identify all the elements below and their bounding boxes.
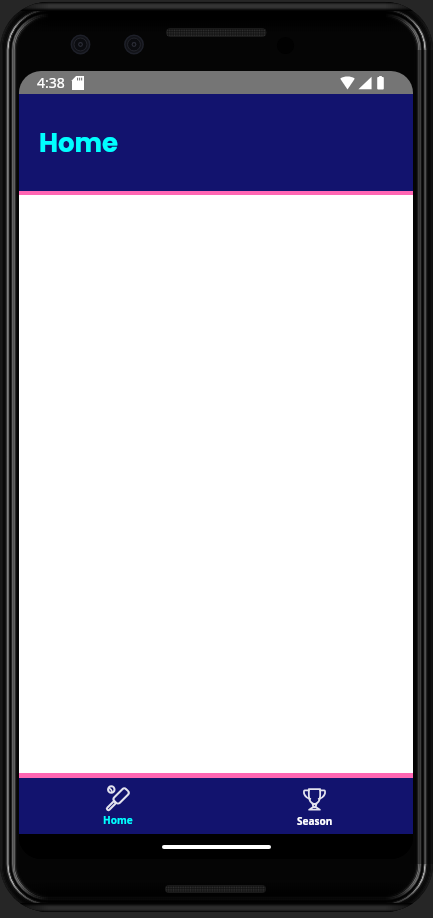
staticText: Home [103,813,133,827]
button[interactable]: Home [19,778,216,834]
staticText: 4:38 [37,73,65,92]
staticText: Home [39,125,119,161]
button[interactable]: Season [216,778,413,834]
staticText: Season [297,814,333,828]
